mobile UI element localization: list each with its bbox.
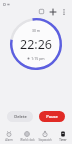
button[interactable]: Timer: [54, 129, 72, 144]
staticText: World clock: [20, 138, 35, 142]
button[interactable]: Pause: [39, 111, 65, 122]
staticText: Alarm: [5, 138, 13, 142]
button[interactable]: Add timer: [47, 6, 58, 17]
button[interactable]: Saved timers: [36, 6, 47, 17]
staticText: Delete: [14, 114, 27, 119]
staticText: 1:15 pm: [31, 56, 45, 61]
staticText: Stopwatch: [38, 138, 52, 142]
button[interactable]: World clock: [18, 129, 36, 144]
staticText: 30 m: [32, 28, 40, 33]
button[interactable]: Alarm: [0, 129, 18, 144]
staticText: 22:26: [20, 36, 52, 53]
button[interactable]: More options: [58, 6, 69, 17]
button[interactable]: Stopwatch: [36, 129, 54, 144]
staticText: Timer: [59, 138, 67, 142]
staticText: Pause: [46, 114, 58, 119]
button[interactable]: Delete: [7, 111, 33, 122]
